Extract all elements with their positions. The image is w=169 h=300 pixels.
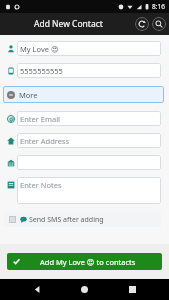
- button[interactable]: Enter Email: [17, 111, 161, 126]
- button[interactable]: Home: [74, 279, 95, 300]
- staticText: 5555555555: [20, 66, 63, 76]
- button[interactable]: Search: [152, 17, 166, 31]
- staticText: Enter Address: [20, 136, 70, 146]
- staticText: Send SMS after adding: [29, 215, 104, 225]
- staticText: Add My Love 😍 to contacts: [40, 257, 136, 267]
- staticText: 8:16: [152, 2, 165, 11]
- button[interactable]: Refresh: [135, 17, 149, 31]
- button[interactable]: Add My Love 😍 to contacts: [7, 253, 162, 270]
- staticText: More: [19, 90, 38, 100]
- button[interactable]: Back: [27, 279, 48, 300]
- button[interactable]: Enter Notes: [17, 177, 161, 204]
- button[interactable]: Enter Address: [17, 133, 161, 148]
- staticText: Enter Notes: [20, 180, 62, 190]
- button[interactable]: Recent apps: [122, 279, 143, 300]
- button[interactable]: My Love 😍: [17, 41, 161, 56]
- button[interactable]: Send SMS after adding: [4, 212, 161, 227]
- staticText: My Love 😍: [20, 44, 59, 54]
- button[interactable]: More: [3, 86, 164, 103]
- button[interactable]: [17, 155, 161, 170]
- button[interactable]: 5555555555: [17, 63, 161, 78]
- staticText: Add New Contact: [34, 18, 103, 30]
- staticText: Enter Email: [20, 114, 61, 124]
